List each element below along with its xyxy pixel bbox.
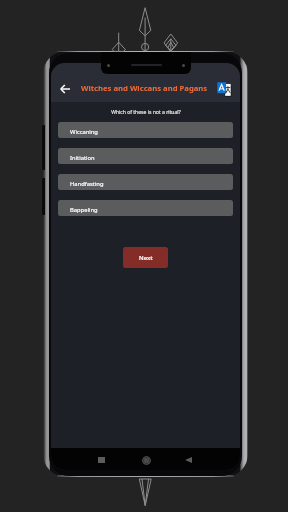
button[interactable]: Home xyxy=(138,452,154,468)
button[interactable]: Back xyxy=(56,76,73,102)
button[interactable]: Initiation xyxy=(58,148,233,164)
staticText: Wiccaning xyxy=(70,128,98,136)
staticText: Initiation xyxy=(70,154,95,162)
button[interactable]: Wiccaning xyxy=(58,122,233,138)
button[interactable]: Back xyxy=(180,452,196,468)
staticText: Witches and Wiccans and Pagans xyxy=(81,83,208,93)
staticText: Bappeling xyxy=(70,206,98,214)
button[interactable]: Bappeling xyxy=(58,200,233,216)
button[interactable]: Handfasting xyxy=(58,174,233,190)
staticText: Handfasting xyxy=(70,180,104,188)
staticText: Next xyxy=(139,254,153,262)
staticText: Which of these is not a ritual? xyxy=(111,109,181,116)
button[interactable]: Next xyxy=(123,247,168,268)
button[interactable]: Translate xyxy=(218,78,236,100)
button[interactable]: Recents xyxy=(93,452,109,468)
